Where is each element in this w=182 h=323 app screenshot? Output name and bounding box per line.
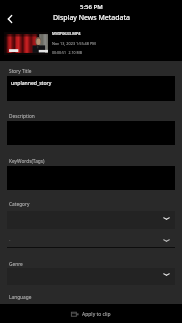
staticText: Language — [9, 294, 32, 301]
staticText: Story Title — [9, 68, 32, 75]
staticText: Apply to clip — [82, 311, 111, 318]
button[interactable]: Subcategory dropdown — [7, 233, 175, 246]
staticText: - — [9, 237, 11, 243]
staticText: MVIP0633.MP4 — [52, 31, 81, 36]
staticText: KeyWords(Tags) — [9, 158, 45, 165]
staticText: Description — [9, 113, 35, 120]
button[interactable]: unplanned_story — [7, 76, 175, 101]
button[interactable]: Back — [3, 12, 17, 26]
button[interactable]: Video thumbnail — [4, 32, 48, 55]
button[interactable]: Apply to clip — [71, 310, 111, 318]
staticText: Genre — [9, 261, 23, 268]
staticText: Nov 13, 2023 1:55:48 PM — [52, 41, 96, 46]
staticText: Display News Metadata — [53, 13, 130, 23]
staticText: unplanned_story — [11, 80, 52, 87]
staticText: 00:00:51 2.10 MB — [52, 50, 82, 55]
staticText: 5:56 PM — [80, 3, 103, 11]
button[interactable]: Category dropdown — [7, 211, 175, 229]
staticText: Category — [9, 201, 30, 208]
button[interactable]: Genre dropdown — [7, 268, 175, 285]
